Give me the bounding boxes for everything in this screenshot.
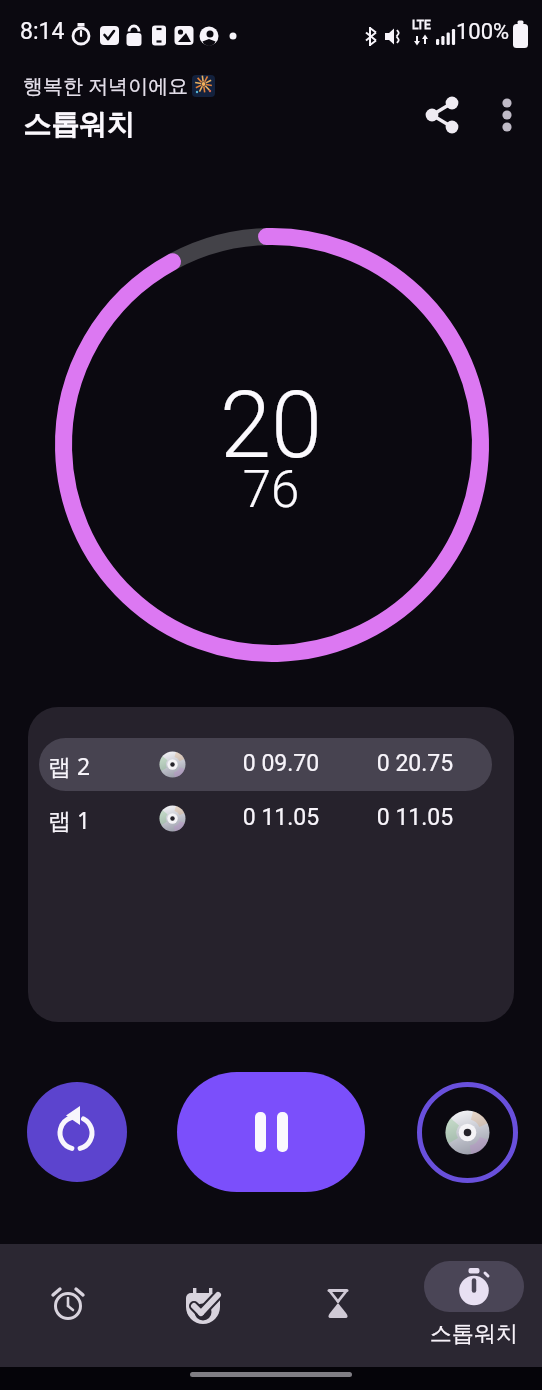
staticText: 스톱워치 <box>23 107 135 142</box>
staticText: LTE <box>412 18 431 32</box>
staticText: 랩 2 <box>48 750 91 781</box>
staticText: 0 11.05 <box>369 804 461 831</box>
button[interactable] <box>417 1082 518 1183</box>
staticText: 0 09.70 <box>235 750 327 777</box>
button[interactable] <box>418 90 468 140</box>
button[interactable] <box>18 1272 118 1336</box>
staticText: 20 <box>0 372 542 480</box>
staticText: 랩 1 <box>48 804 91 835</box>
staticText: 100% <box>456 19 510 45</box>
staticText: 76 <box>0 460 542 520</box>
button[interactable] <box>177 1072 365 1192</box>
staticText: 행복한 저녁이에요 <box>23 72 189 99</box>
button[interactable] <box>288 1272 388 1336</box>
staticText: 0 20.75 <box>369 750 461 777</box>
button[interactable] <box>27 1082 127 1182</box>
button[interactable] <box>153 1272 253 1336</box>
staticText: 0 11.05 <box>235 804 327 831</box>
staticText: 8:14 <box>20 18 65 45</box>
staticText: 스톱워치 <box>414 1320 534 1348</box>
button[interactable]: 랩 1 <box>39 792 492 845</box>
button[interactable] <box>486 92 528 138</box>
button[interactable]: 랩 2 <box>39 738 492 791</box>
button[interactable] <box>424 1261 524 1312</box>
